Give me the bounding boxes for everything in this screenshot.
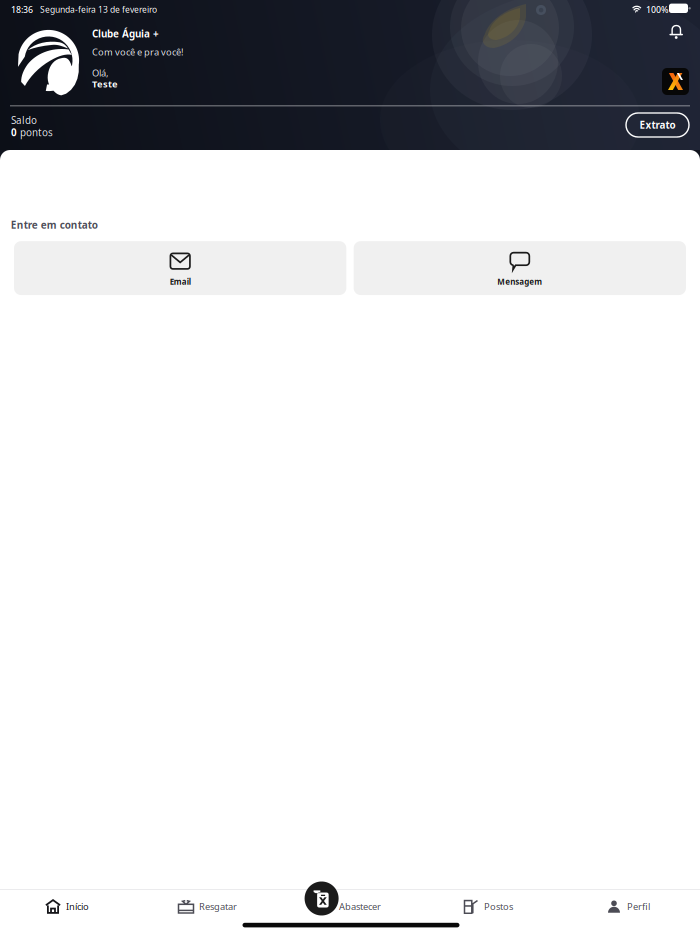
staticText: Resgatar bbox=[199, 900, 237, 913]
staticText: Perfil bbox=[627, 900, 650, 913]
staticText: 0 bbox=[11, 126, 17, 139]
staticText: 18:36 bbox=[11, 4, 33, 16]
button[interactable]: Extrato bbox=[626, 113, 689, 137]
staticText: Saldo bbox=[11, 113, 37, 127]
button[interactable]: Ipiranga bbox=[662, 68, 689, 95]
staticText: Mensagem bbox=[497, 276, 542, 287]
button[interactable]: Notificações bbox=[669, 23, 683, 39]
staticText: Clube Águia + bbox=[92, 27, 159, 40]
staticText: Abastecer bbox=[339, 900, 381, 913]
button[interactable]: Abastecer bbox=[339, 884, 381, 929]
button[interactable]: Mensagem bbox=[354, 242, 686, 295]
staticText: Segunda-feira 13 de fevereiro bbox=[40, 4, 157, 15]
staticText: Extrato bbox=[639, 118, 675, 132]
button[interactable]: Email bbox=[14, 242, 346, 295]
staticText: Teste bbox=[92, 77, 118, 90]
button[interactable]: Postos bbox=[463, 884, 513, 929]
staticText: Email bbox=[170, 276, 191, 287]
staticText: Início bbox=[66, 900, 89, 913]
staticText: Olá, bbox=[92, 66, 109, 79]
staticText: pontos bbox=[17, 126, 53, 139]
staticText: 100% bbox=[646, 4, 668, 16]
staticText: Entre em contato bbox=[11, 218, 98, 232]
staticText: Com você e pra você! bbox=[92, 45, 184, 58]
button[interactable]: Perfil bbox=[606, 884, 650, 929]
staticText: Postos bbox=[484, 900, 513, 913]
button[interactable]: Resgatar bbox=[178, 884, 237, 929]
button[interactable]: Início bbox=[45, 884, 89, 929]
button[interactable]: Abastecer bbox=[305, 881, 339, 915]
